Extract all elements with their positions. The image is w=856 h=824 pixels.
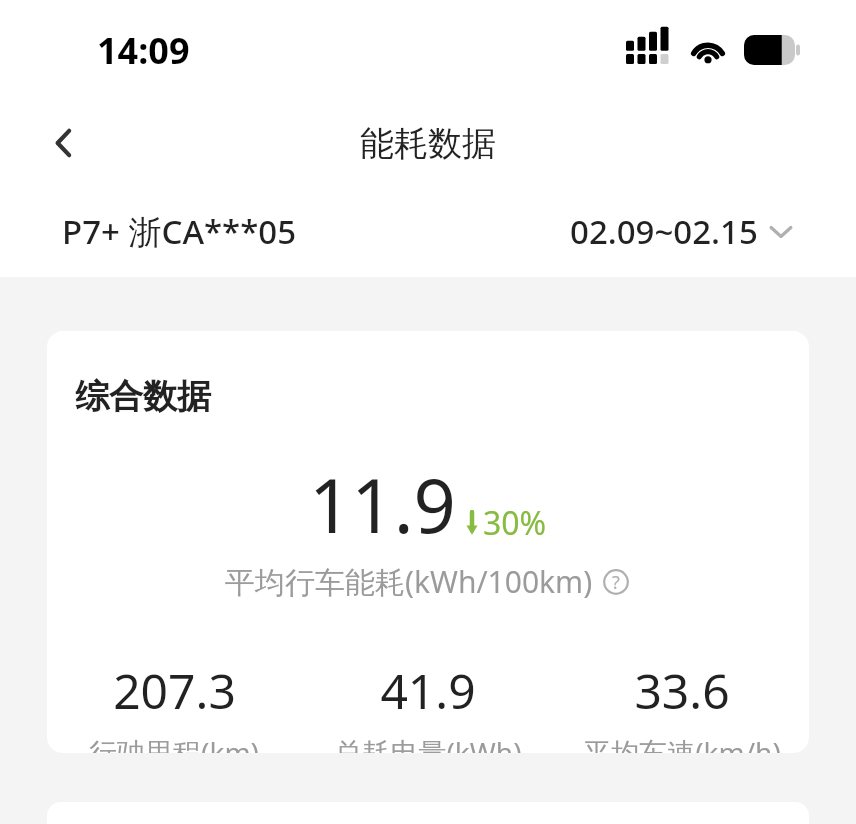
button[interactable]: 41.9 [301,658,555,753]
staticText: 207.3 [113,658,236,723]
button[interactable]: 02.09~02.15 [570,209,794,254]
staticText: P7+ 浙CA***05 [62,209,297,254]
staticText: 平均行车能耗(kWh/100km) [225,561,593,602]
button[interactable]: 帮助 [601,567,631,597]
staticText: 41.9 [380,658,476,723]
staticText: 综合数据 [75,375,211,418]
button[interactable]: Back [32,111,96,175]
button[interactable]: 33.6 [555,658,809,753]
staticText: 平均车速(km/h) [583,733,781,753]
staticText: 11.9 [309,454,456,555]
staticText: 行驶里程(km) [89,733,259,753]
staticText: ? [612,570,620,595]
staticText: 02.09~02.15 [570,209,758,254]
staticText: 能耗数据 [360,122,496,165]
staticText: 总耗电量(kWh) [334,733,522,753]
button[interactable]: 综合数据 [47,331,809,753]
staticText: 14:09 [97,26,190,75]
staticText: 33.6 [634,658,730,723]
button[interactable]: 207.3 [47,658,301,753]
staticText: 30% [483,501,547,545]
